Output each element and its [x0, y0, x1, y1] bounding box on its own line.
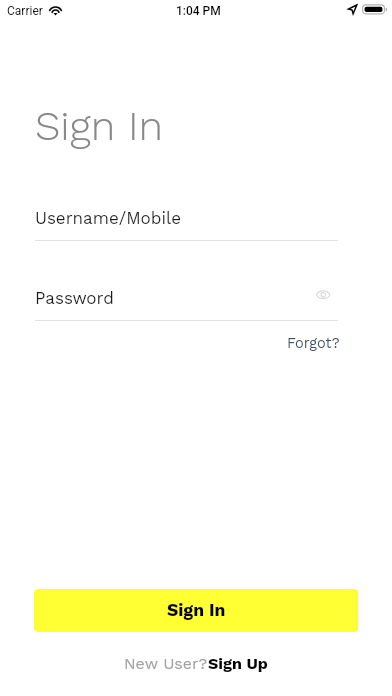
button[interactable]: Sign In — [34, 589, 358, 632]
staticText: New User? — [124, 654, 208, 673]
staticText: Sign Up — [208, 654, 268, 673]
button[interactable]: Forgot? — [281, 330, 346, 357]
button[interactable]: Password — [35, 286, 338, 321]
button[interactable]: New User? — [120, 650, 272, 677]
button[interactable]: Username/Mobile — [35, 206, 338, 241]
staticText: Username/Mobile — [35, 208, 181, 228]
staticText: Sign In — [35, 102, 164, 150]
other: Battery — [362, 4, 388, 16]
button[interactable]: Show password — [312, 283, 336, 307]
staticText: Password — [35, 288, 114, 308]
staticText: Sign In — [167, 600, 226, 621]
staticText: Forgot? — [287, 335, 340, 352]
other: Location — [348, 4, 360, 16]
staticText: Carrier — [7, 4, 43, 18]
staticText: 1:04 PM — [176, 4, 221, 18]
